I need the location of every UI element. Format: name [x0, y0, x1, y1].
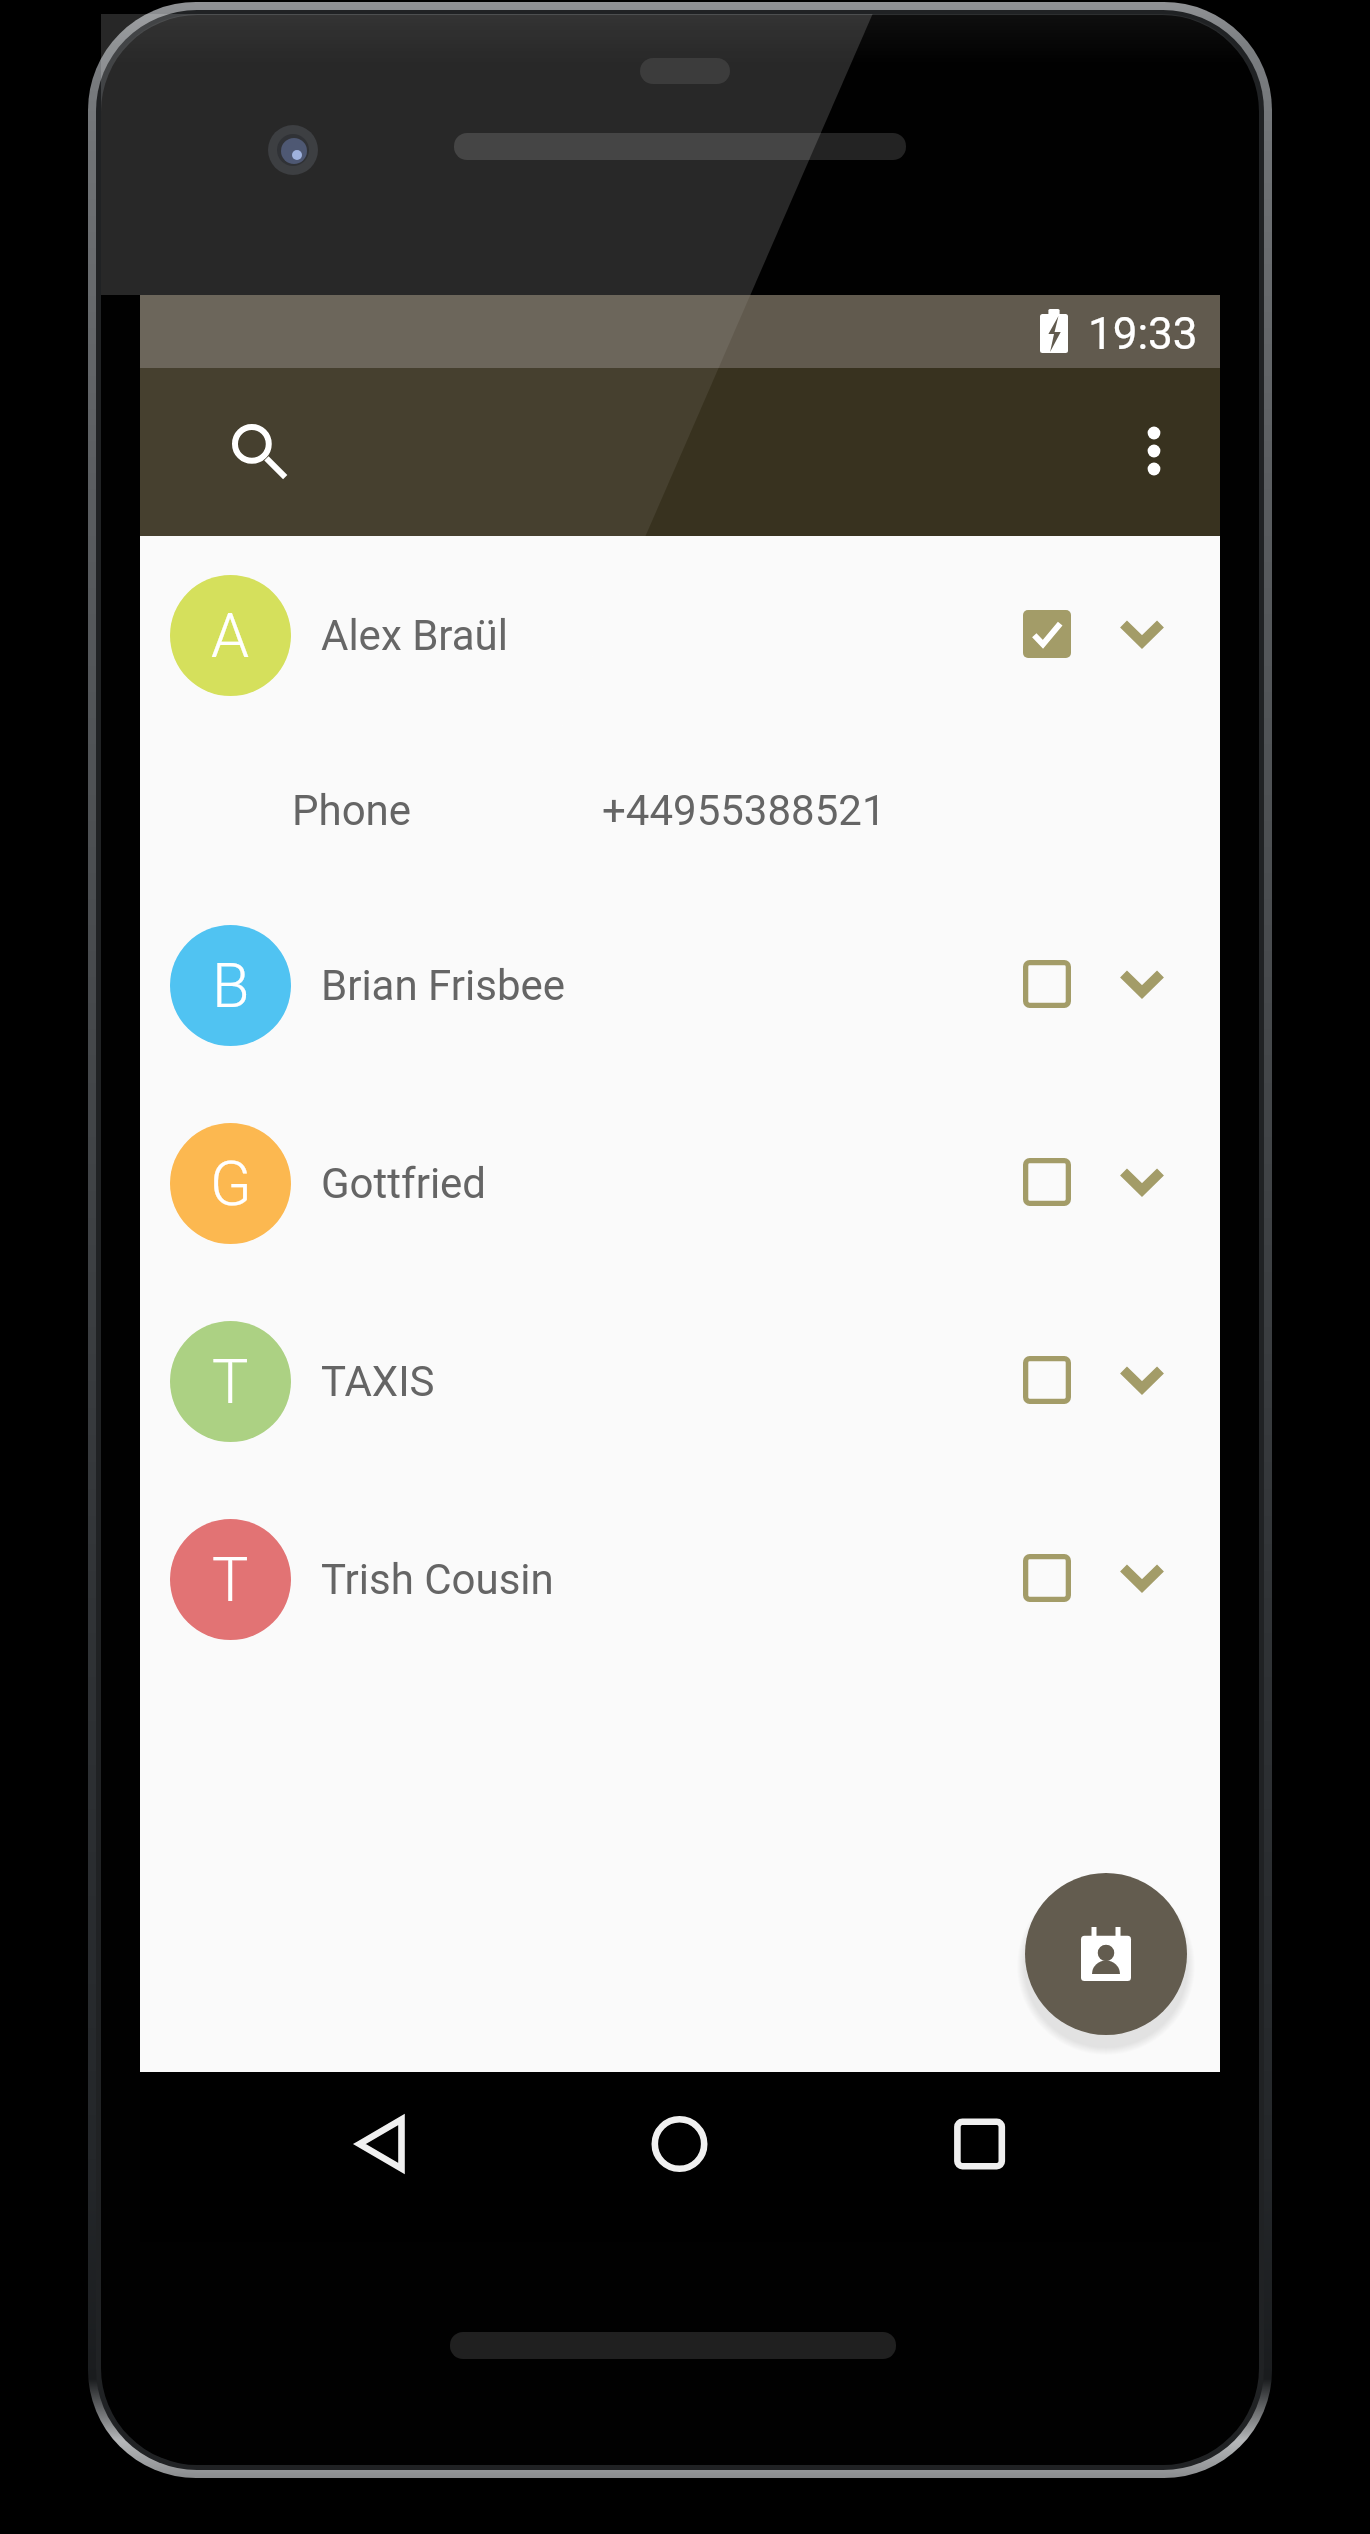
staticText: A [211, 600, 250, 671]
button[interactable]: Select [991, 1126, 1102, 1237]
button[interactable]: New contact [1025, 1873, 1187, 2035]
button[interactable]: Search [197, 389, 323, 515]
button[interactable]: A [140, 536, 1220, 734]
button[interactable]: Home [620, 2084, 740, 2204]
button[interactable]: Select [991, 928, 1102, 1039]
button[interactable]: T [140, 1282, 1220, 1480]
button[interactable]: B [140, 886, 1220, 1084]
staticText: T [212, 1346, 249, 1417]
staticText: T [212, 1544, 249, 1615]
button[interactable]: More options [1091, 388, 1217, 514]
staticText: Phone [292, 786, 412, 835]
button[interactable]: Back [321, 2084, 441, 2204]
button[interactable]: Select [991, 578, 1102, 689]
button[interactable]: Expand [1086, 927, 1197, 1038]
staticText: B [212, 950, 250, 1021]
staticText: Alex Braül [321, 611, 508, 660]
button[interactable]: Expand [1086, 577, 1197, 688]
button[interactable]: T [140, 1480, 1220, 1678]
staticText: 19:33 [1088, 308, 1198, 360]
button[interactable]: Select [991, 1324, 1102, 1435]
button[interactable]: G [140, 1084, 1220, 1282]
staticText: Brian Frisbee [321, 961, 566, 1010]
staticText: Trish Cousin [321, 1555, 554, 1604]
button[interactable]: Recent apps [920, 2084, 1040, 2204]
button[interactable]: Expand [1086, 1125, 1197, 1236]
staticText: Gottfried [321, 1159, 487, 1208]
staticText: +44955388521 [602, 786, 886, 835]
button[interactable]: Select [991, 1522, 1102, 1633]
staticText: TAXIS [321, 1357, 435, 1406]
button[interactable]: Phone [140, 734, 1220, 886]
button[interactable]: Expand [1086, 1323, 1197, 1434]
staticText: G [210, 1148, 252, 1219]
button[interactable]: Expand [1086, 1521, 1197, 1632]
